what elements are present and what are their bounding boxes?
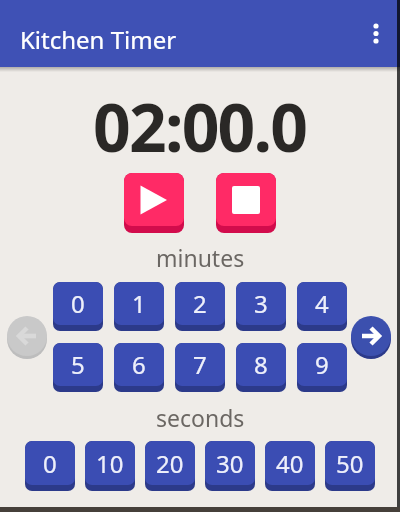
button[interactable] (351, 316, 391, 359)
button[interactable]: 0 (53, 282, 103, 331)
staticText: 7 (193, 348, 207, 381)
button[interactable]: 20 (145, 441, 195, 491)
staticText: 30 (216, 447, 244, 480)
staticText: 4 (315, 287, 329, 320)
button[interactable]: 50 (325, 441, 375, 491)
button[interactable]: 7 (175, 343, 225, 392)
staticText: 1 (132, 287, 146, 320)
button[interactable]: 4 (297, 282, 347, 331)
button[interactable]: 3 (236, 282, 286, 331)
staticText: 02:00.0 (93, 81, 307, 171)
staticText: 0 (71, 287, 85, 320)
button[interactable]: 9 (297, 343, 347, 392)
button[interactable] (124, 173, 184, 233)
staticText: 3 (254, 287, 268, 320)
staticText: 10 (96, 447, 124, 480)
staticText: Kitchen Timer (20, 23, 177, 56)
button[interactable]: 2 (175, 282, 225, 331)
button[interactable] (366, 14, 386, 54)
button[interactable] (7, 316, 47, 359)
staticText: 40 (276, 447, 304, 480)
staticText: 0 (43, 447, 57, 480)
button[interactable]: 1 (114, 282, 164, 331)
button[interactable]: 10 (85, 441, 135, 491)
staticText: 9 (315, 348, 329, 381)
staticText: 20 (156, 447, 184, 480)
staticText: 50 (336, 447, 364, 480)
button[interactable] (216, 173, 276, 233)
staticText: 5 (71, 348, 85, 381)
staticText: 6 (132, 348, 146, 381)
button[interactable]: 0 (25, 441, 75, 491)
staticText: minutes (156, 242, 245, 273)
button[interactable]: 6 (114, 343, 164, 392)
staticText: 8 (254, 348, 268, 381)
button[interactable]: 8 (236, 343, 286, 392)
staticText: seconds (156, 402, 245, 433)
button[interactable]: 30 (205, 441, 255, 491)
button[interactable]: 5 (53, 343, 103, 392)
button[interactable]: 40 (265, 441, 315, 491)
staticText: 2 (193, 287, 207, 320)
